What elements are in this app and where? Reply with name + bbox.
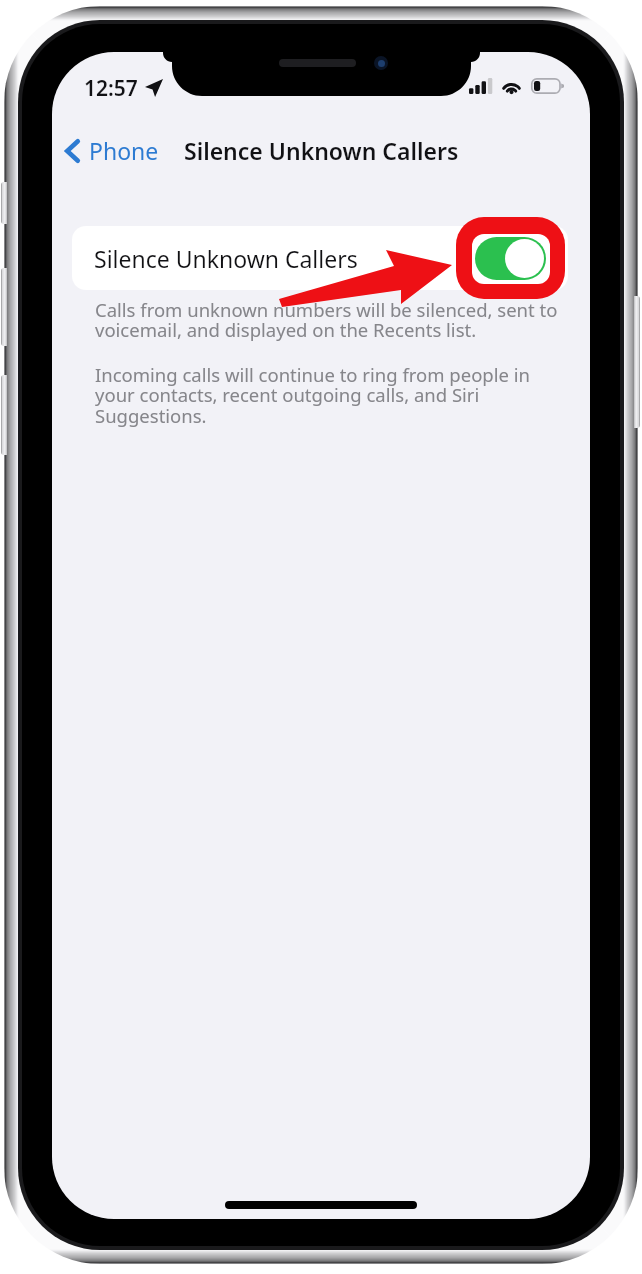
staticText: Calls from unknown numbers will be silen… [95, 297, 561, 343]
button[interactable]: Silence Unknown Callers [72, 226, 568, 290]
button[interactable]: Phone [55, 128, 169, 173]
staticText: Phone [89, 135, 159, 166]
staticText: Silence Unknown Callers [184, 135, 459, 166]
staticText: Silence Unknown Callers [94, 243, 358, 274]
button[interactable]: Silence Unknown Callers switch [456, 217, 565, 299]
staticText: 12:57 [84, 74, 138, 103]
staticText: Incoming calls will continue to ring fro… [95, 362, 561, 429]
